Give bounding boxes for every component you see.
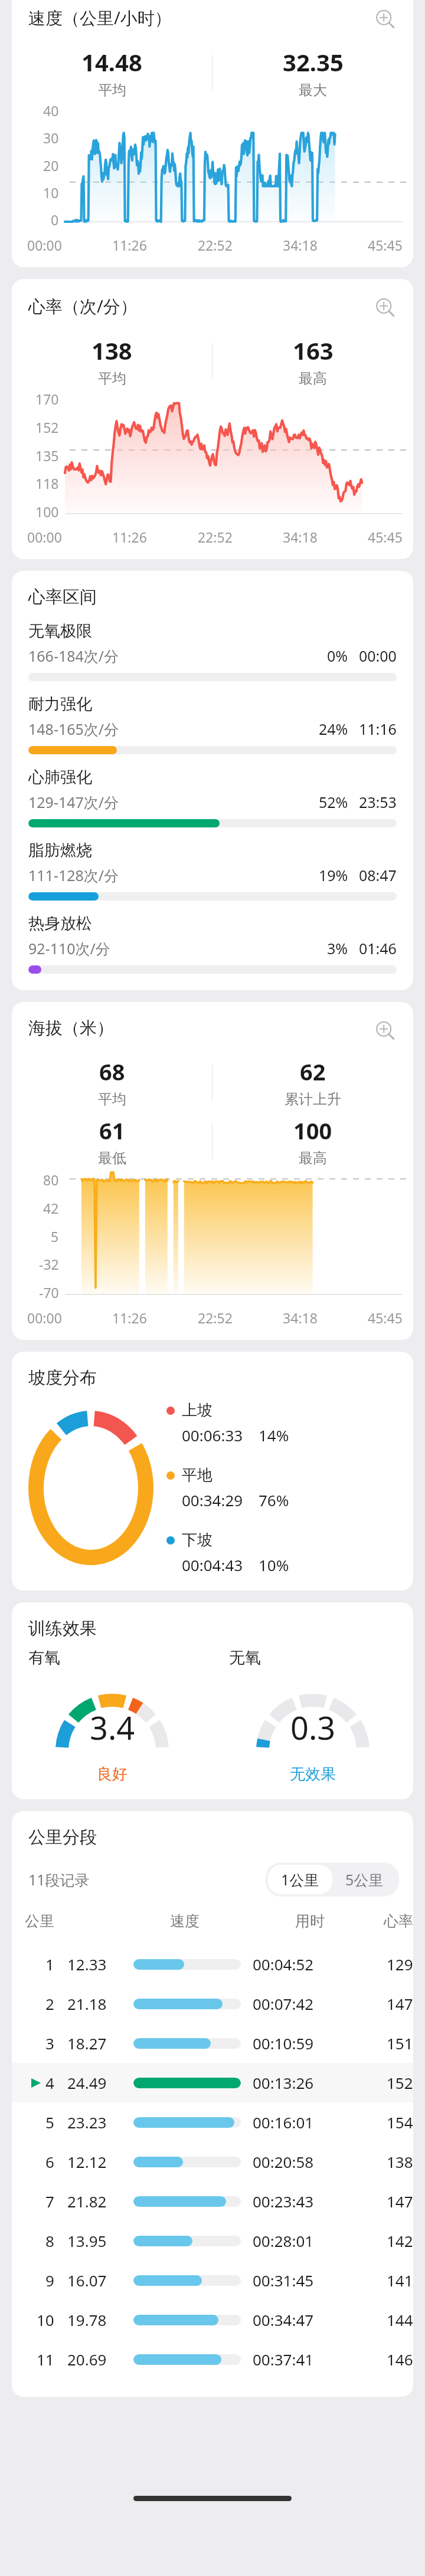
staticText: 19.78	[67, 2309, 107, 2330]
staticText: -32	[39, 1255, 59, 1273]
staticText: 100	[293, 1115, 332, 1146]
staticText: 40	[43, 101, 59, 120]
staticText: 良好	[97, 1765, 127, 1784]
staticText: 45:45	[368, 528, 403, 546]
staticText: 163	[293, 334, 334, 366]
button[interactable]: 1	[12, 1944, 413, 1984]
staticText: 10%	[259, 1555, 289, 1575]
staticText: 23.23	[67, 2112, 107, 2133]
staticText: 14%	[259, 1425, 289, 1445]
button[interactable]: 7	[12, 2181, 413, 2221]
staticText: 00:07:42	[253, 1993, 314, 2014]
staticText: 13.95	[67, 2230, 107, 2251]
button[interactable]: 2	[12, 1984, 413, 2023]
staticText: 公里	[25, 1912, 54, 1930]
button[interactable]: 放大速度图表	[372, 6, 399, 33]
staticText: 68	[99, 1056, 125, 1087]
staticText: 23:53	[359, 792, 397, 812]
staticText: 152	[35, 418, 59, 436]
staticText: 52%	[319, 792, 348, 812]
staticText: 训练效果	[28, 1618, 97, 1639]
staticText: 22:52	[198, 236, 233, 254]
staticText: 平均	[98, 81, 126, 99]
button[interactable]: 5公里	[332, 1865, 397, 1894]
staticText: 最低	[98, 1149, 126, 1167]
staticText: 有氧	[28, 1648, 60, 1668]
staticText: 11	[37, 2349, 54, 2370]
staticText: 1公里	[281, 1869, 319, 1890]
staticText: 147	[387, 1993, 413, 2014]
staticText: 20	[43, 156, 59, 175]
staticText: 00:31:45	[253, 2270, 314, 2291]
staticText: 11:26	[112, 528, 147, 546]
staticText: 34:18	[283, 528, 318, 546]
staticText: 30	[43, 129, 59, 147]
staticText: 129	[387, 1954, 413, 1974]
staticText: 147	[387, 2191, 413, 2212]
staticText: 9	[45, 2270, 54, 2291]
button[interactable]: 放大心率图表	[372, 294, 399, 321]
button[interactable]: 1公里	[268, 1865, 332, 1894]
staticText: 00:04:52	[253, 1954, 314, 1974]
staticText: 速度（公里/小时）	[28, 6, 172, 29]
staticText: 7	[45, 2191, 54, 2212]
staticText: 135	[35, 446, 59, 465]
staticText: 下坡	[182, 1530, 212, 1550]
staticText: 00:23:43	[253, 2191, 314, 2212]
button[interactable]: 10	[12, 2300, 413, 2340]
staticText: 最高	[299, 370, 327, 387]
staticText: 心肺强化	[28, 767, 92, 787]
staticText: 170	[35, 390, 59, 408]
staticText: 3.4	[90, 1706, 135, 1749]
button[interactable]: 放大海拔图表	[372, 1017, 399, 1044]
staticText: 22:52	[198, 528, 233, 546]
staticText: 平均	[98, 1090, 126, 1108]
staticText: 61	[99, 1115, 125, 1146]
button[interactable]: 11	[12, 2340, 413, 2379]
button[interactable]: 4	[12, 2063, 413, 2102]
button[interactable]: 6	[12, 2142, 413, 2181]
button[interactable]: 8	[12, 2221, 413, 2260]
staticText: 5	[51, 1227, 59, 1246]
button[interactable]: 9	[12, 2260, 413, 2300]
staticText: 166-184次/分	[28, 646, 327, 666]
staticText: 151	[387, 2033, 413, 2053]
staticText: 无效果	[290, 1765, 336, 1784]
staticText: 152	[387, 2072, 413, 2093]
staticText: 80	[43, 1171, 59, 1189]
staticText: 00:34:47	[253, 2309, 314, 2330]
staticText: 32.35	[283, 46, 344, 78]
staticText: 无氧	[229, 1648, 261, 1668]
button[interactable]: 3	[12, 2023, 413, 2063]
staticText: 00:16:01	[253, 2112, 314, 2133]
staticText: 76%	[259, 1490, 289, 1510]
staticText: 最高	[299, 1149, 327, 1167]
staticText: 耐力强化	[28, 694, 92, 714]
staticText: 138	[91, 334, 132, 366]
staticText: 3%	[327, 938, 348, 958]
button[interactable]: 5	[12, 2102, 413, 2142]
staticText: 00:20:58	[253, 2151, 314, 2172]
staticText: 62	[300, 1056, 326, 1087]
staticText: 热身放松	[28, 914, 92, 934]
staticText: 心率（次/分）	[28, 294, 138, 318]
staticText: 118	[35, 474, 59, 492]
staticText: 0%	[327, 646, 348, 666]
staticText: 脂肪燃烧	[28, 840, 92, 860]
staticText: 平均	[98, 370, 126, 387]
staticText: 10	[37, 2309, 54, 2330]
staticText: 累计上升	[285, 1090, 341, 1108]
staticText: 111-128次/分	[28, 865, 319, 885]
staticText: 18.27	[67, 2033, 107, 2053]
staticText: 00:04:43	[182, 1555, 243, 1575]
staticText: 20.69	[67, 2349, 107, 2370]
staticText: 8	[45, 2230, 54, 2251]
staticText: 海拔（米）	[28, 1017, 114, 1039]
staticText: 心率区间	[28, 586, 97, 608]
staticText: 45:45	[368, 236, 403, 254]
staticText: 24.49	[67, 2072, 107, 2093]
staticText: 129-147次/分	[28, 792, 319, 812]
staticText: 坡度分布	[28, 1367, 97, 1389]
staticText: 144	[387, 2309, 413, 2330]
staticText: 34:18	[283, 236, 318, 254]
